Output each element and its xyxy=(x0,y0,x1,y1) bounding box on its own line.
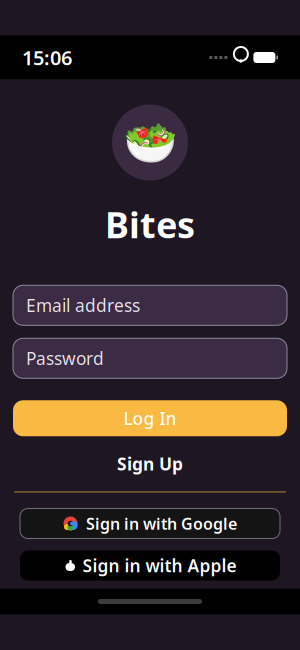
staticText: Sign in with Google xyxy=(86,513,237,534)
button[interactable]: Sign in with Apple xyxy=(20,550,280,580)
staticText: 15:06 xyxy=(22,44,72,71)
button[interactable]: Log In xyxy=(13,400,287,436)
button[interactable]: Password xyxy=(13,338,287,378)
staticText: 🥗 xyxy=(122,117,177,168)
staticText: Log In xyxy=(123,407,176,430)
button[interactable]: Sign Up xyxy=(101,447,199,480)
staticText: Email address xyxy=(26,294,140,317)
button[interactable]: Sign in with Google xyxy=(20,508,280,538)
staticText: Sign in with Apple xyxy=(82,554,236,577)
staticText: Sign Up xyxy=(117,452,183,475)
staticText: Bites xyxy=(105,200,195,248)
button[interactable]: Email address xyxy=(13,285,287,325)
staticText: Password xyxy=(26,347,104,370)
